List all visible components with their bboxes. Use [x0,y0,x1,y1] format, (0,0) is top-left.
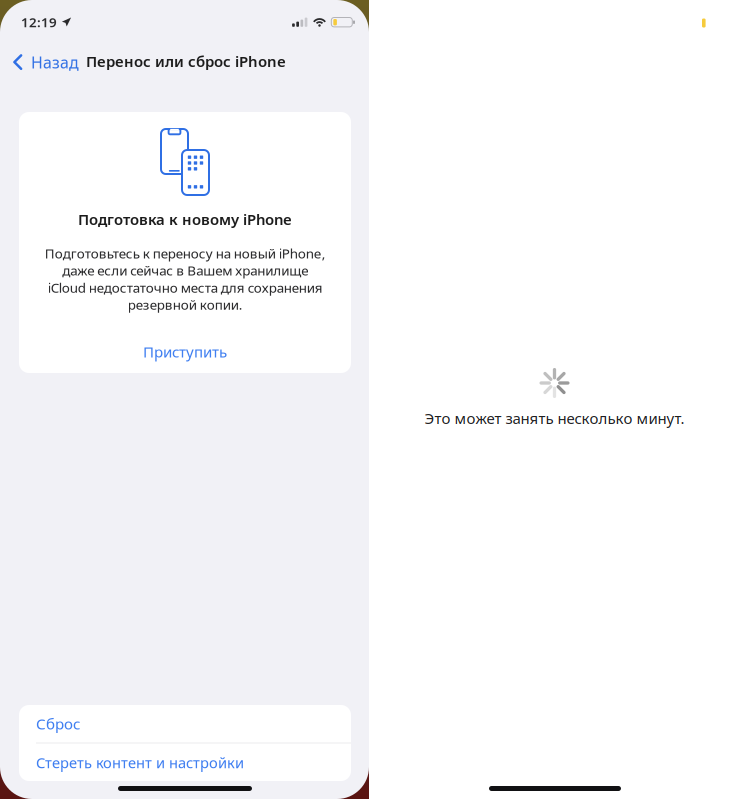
staticText: Это может занять несколько минут. [424,408,684,428]
staticText: Назад [31,51,79,73]
button[interactable]: Стереть контент и настройки [19,743,351,781]
staticText: Перенос или сброс iPhone [86,51,286,71]
staticText: Сброс [36,713,80,734]
staticText: Приступить [143,341,227,362]
staticText: Стереть контент и настройки [36,752,244,772]
button[interactable]: Приступить [129,335,241,368]
button[interactable]: Назад [8,48,84,78]
staticText: 12:19 [21,13,57,31]
staticText: Подготовка к новому iPhone [78,209,292,229]
staticText: Подготовьтесь к переносу на новый iPhone… [44,244,325,314]
button[interactable]: Сброс [19,704,351,742]
